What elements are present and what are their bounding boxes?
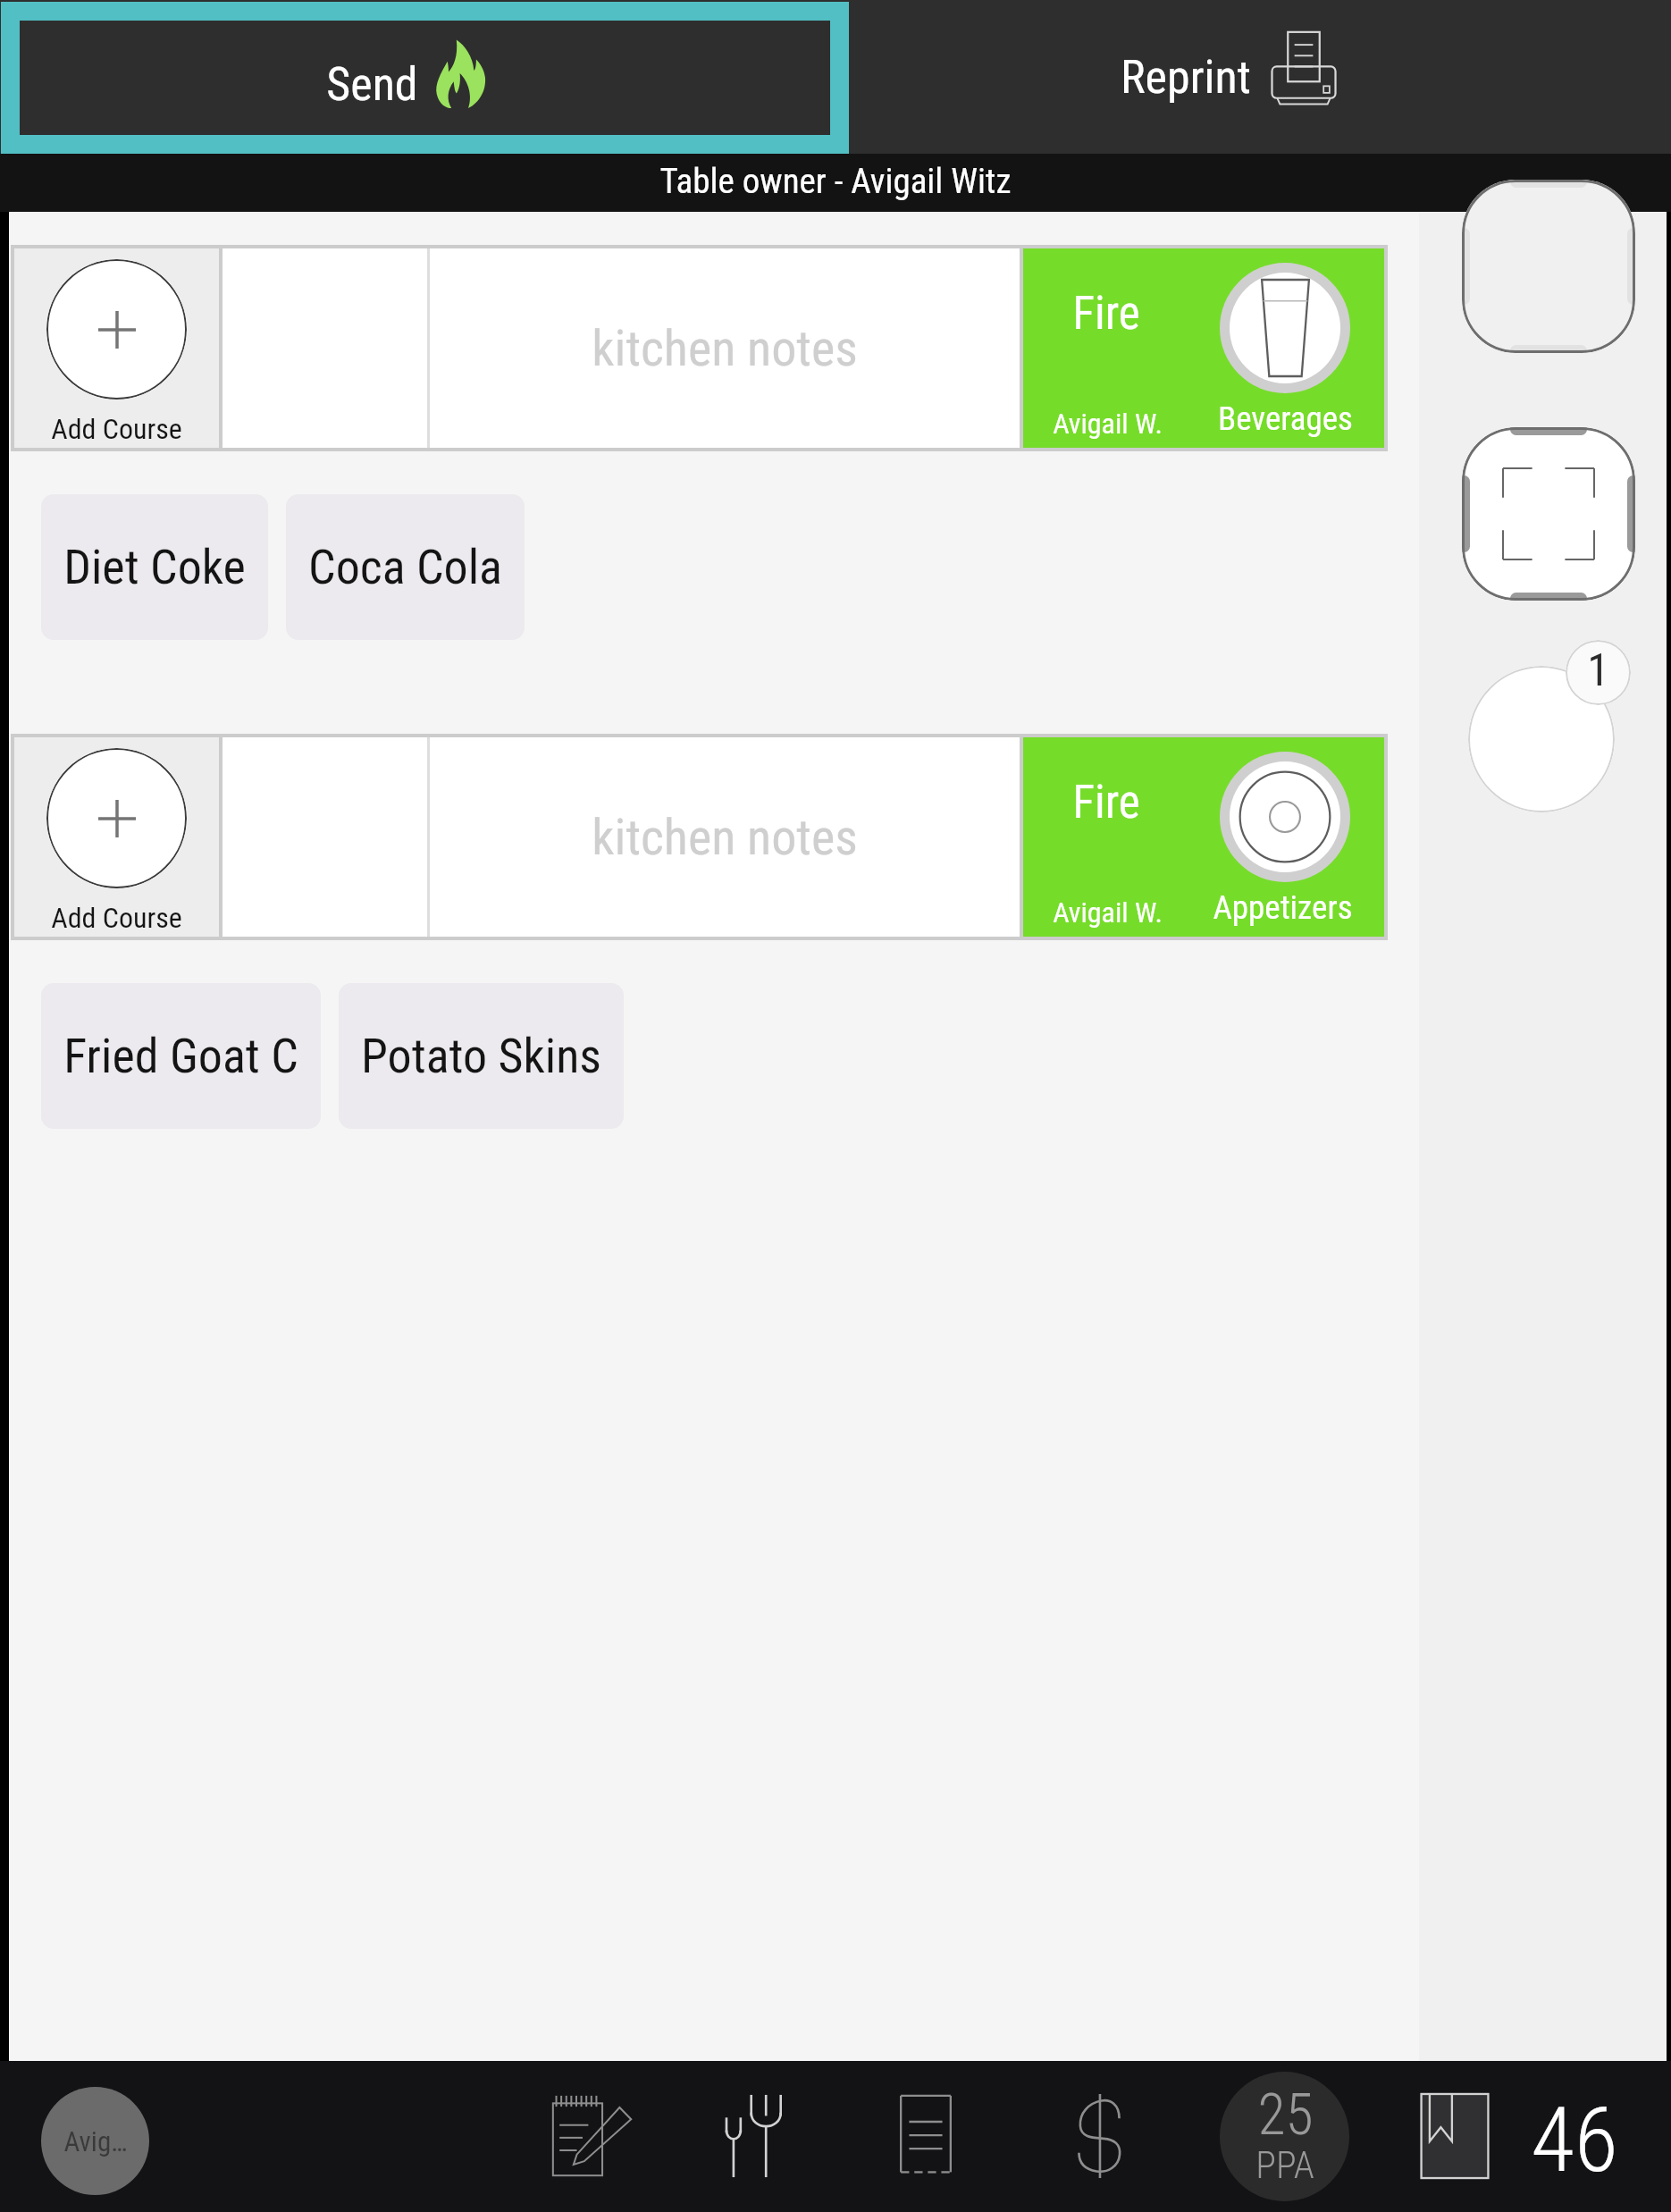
button[interactable]: Seat <box>1468 666 1615 812</box>
staticText: Avigail W. <box>1053 407 1163 441</box>
staticText: Fire <box>1072 776 1140 829</box>
button[interactable]: Diet Coke <box>41 494 268 640</box>
staticText: Table owner - Avigail Witz <box>659 161 1012 202</box>
button[interactable]: Transfer tab <box>1462 180 1635 353</box>
button[interactable]: Seat 1 <box>1566 640 1631 705</box>
staticText: 1 <box>1587 644 1609 697</box>
button[interactable]: 25 per person average <box>1220 2072 1349 2201</box>
staticText: 25 <box>1257 2082 1314 2149</box>
button[interactable]: Server Avigail <box>41 2087 149 2195</box>
staticText: Appetizers <box>1213 888 1353 927</box>
staticText: Reprint <box>1121 50 1251 105</box>
staticText: Fire <box>1072 287 1140 341</box>
button[interactable]: Order notes <box>546 2090 639 2183</box>
button[interactable]: Bookmark <box>1406 2087 1504 2185</box>
staticText: Avigail W. <box>1053 896 1163 929</box>
button[interactable]: Payment <box>1050 2087 1148 2185</box>
staticText: kitchen notes <box>592 808 858 867</box>
staticText: Fried Goat C <box>63 1028 298 1084</box>
button[interactable]: Coca Cola <box>286 494 525 640</box>
button[interactable]: Potato Skins <box>339 983 624 1129</box>
button[interactable]: Guests <box>1530 2088 1619 2186</box>
button[interactable]: Fire <box>1023 248 1384 448</box>
button[interactable]: Fried Goat C <box>41 983 321 1129</box>
staticText: Potato Skins <box>361 1028 601 1084</box>
button[interactable]: Fire <box>1023 737 1384 937</box>
button[interactable]: Check <box>879 2090 972 2183</box>
button[interactable]: Split check <box>1462 427 1635 601</box>
staticText: PPA <box>1255 2143 1314 2187</box>
button[interactable]: kitchen notes <box>430 248 1020 448</box>
staticText: Coca Cola <box>308 539 502 595</box>
button[interactable]: Add Course <box>14 248 219 448</box>
staticText: Diet Coke <box>63 539 246 595</box>
staticText: 46 <box>1531 2088 1618 2186</box>
button[interactable]: Send <box>20 21 830 135</box>
button[interactable]: Reprint <box>849 0 1671 154</box>
staticText: kitchen notes <box>592 319 858 378</box>
staticText: Avig… <box>63 2125 128 2157</box>
button[interactable]: Add Course <box>14 737 219 937</box>
button[interactable]: kitchen notes <box>430 737 1020 937</box>
staticText: Add Course <box>51 412 182 446</box>
staticText: Beverages <box>1218 400 1353 438</box>
button[interactable]: Menu <box>708 2090 801 2183</box>
staticText: Send <box>326 57 418 112</box>
staticText: Add Course <box>51 901 182 935</box>
